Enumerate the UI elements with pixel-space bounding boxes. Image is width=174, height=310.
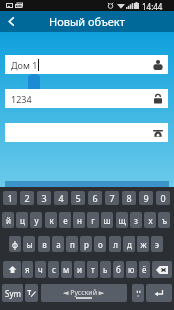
button[interactable]: п: [66, 236, 78, 252]
button[interactable]: г: [87, 212, 99, 228]
button[interactable]: ц: [16, 212, 28, 228]
staticText: р: [84, 239, 89, 250]
staticText: ь: [103, 264, 108, 275]
button[interactable]: 8: [122, 191, 136, 205]
staticText: в: [42, 239, 47, 250]
staticText: к: [49, 215, 54, 226]
button[interactable]: 7: [105, 191, 119, 205]
staticText: 0: [160, 192, 166, 204]
button[interactable]: Sym: [2, 284, 23, 302]
staticText: ю: [128, 264, 135, 275]
staticText: и: [77, 264, 82, 275]
staticText: Sym: [5, 288, 21, 299]
staticText: 1: [7, 192, 13, 204]
button[interactable]: 4: [54, 191, 68, 205]
staticText: 6: [92, 192, 98, 204]
button[interactable]: Change input method: [25, 284, 38, 302]
button[interactable]: о: [94, 236, 106, 252]
button[interactable]: е: [59, 212, 71, 228]
staticText: Новый объект: [49, 14, 125, 29]
button[interactable]: Backspace: [152, 261, 172, 278]
button[interactable]: н: [73, 212, 85, 228]
button[interactable]: ь: [100, 261, 111, 278]
staticText: а: [56, 239, 61, 250]
staticText: ф: [12, 239, 18, 250]
staticText: ё: [142, 264, 147, 275]
button[interactable]: й: [2, 212, 14, 228]
staticText: с: [52, 264, 56, 275]
button[interactable]: к: [45, 212, 57, 228]
button[interactable]: 0: [156, 191, 170, 205]
button[interactable]: и: [74, 261, 85, 278]
button[interactable]: 5: [71, 191, 85, 205]
button[interactable]: 6: [88, 191, 102, 205]
button[interactable]: Back: [0, 11, 22, 32]
button[interactable]: ч: [35, 261, 46, 278]
staticText: х: [148, 215, 153, 226]
button[interactable]: д: [123, 236, 135, 252]
staticText: б: [116, 264, 121, 275]
button[interactable]: я: [22, 261, 33, 278]
staticText: ц: [20, 215, 25, 226]
button[interactable]: с: [48, 261, 59, 278]
button[interactable]: л: [109, 236, 121, 252]
button[interactable]: 1: [3, 191, 17, 205]
button[interactable]: ъ: [158, 212, 170, 228]
button[interactable]: в: [38, 236, 50, 252]
button[interactable]: Space: [41, 284, 127, 302]
staticText: п: [70, 239, 75, 250]
staticText: ж: [140, 239, 147, 250]
button[interactable]: ш: [101, 212, 113, 228]
staticText: й: [6, 215, 11, 226]
button[interactable]: э: [151, 236, 163, 252]
staticText: е: [63, 215, 68, 226]
button[interactable]: ф: [9, 236, 21, 252]
staticText: 2: [24, 192, 30, 204]
button[interactable]: х: [144, 212, 156, 228]
button[interactable]: Enter: [146, 284, 172, 302]
staticText: 14:44: [142, 1, 163, 12]
staticText: 5: [75, 192, 81, 204]
staticText: ш: [103, 215, 111, 226]
staticText: 1234: [11, 93, 32, 105]
button[interactable]: а: [52, 236, 64, 252]
button[interactable]: 2: [20, 191, 34, 205]
staticText: 9: [143, 192, 149, 204]
staticText: г: [91, 215, 95, 226]
staticText: у: [34, 215, 39, 226]
staticText: я: [25, 264, 30, 275]
staticText: 7: [109, 192, 115, 204]
staticText: Дом 1: [11, 59, 38, 71]
button[interactable]: т: [87, 261, 98, 278]
staticText: н: [77, 215, 82, 226]
button[interactable]: [132, 284, 144, 302]
staticText: ъ: [162, 215, 167, 226]
button[interactable]: ё: [139, 261, 150, 278]
button[interactable]: щ: [116, 212, 128, 228]
staticText: з: [134, 215, 138, 226]
button[interactable]: Shift: [3, 261, 21, 278]
staticText: л: [113, 239, 118, 250]
staticText: ы: [26, 239, 33, 250]
button[interactable]: ю: [126, 261, 137, 278]
button[interactable]: р: [80, 236, 92, 252]
button[interactable]: 3: [37, 191, 51, 205]
staticText: ◄ Русский ►: [63, 288, 105, 298]
staticText: 4: [58, 192, 64, 204]
button[interactable]: 9: [139, 191, 153, 205]
button[interactable]: б: [113, 261, 124, 278]
button[interactable]: м: [61, 261, 72, 278]
button[interactable]: у: [30, 212, 42, 228]
staticText: ч: [38, 264, 43, 275]
button[interactable]: ж: [137, 236, 149, 252]
staticText: щ: [118, 215, 126, 226]
staticText: 3: [41, 192, 47, 204]
button[interactable]: 1234: [5, 89, 168, 108]
button[interactable]: Дом 1: [5, 55, 168, 74]
button[interactable]: [5, 123, 168, 142]
button[interactable]: з: [130, 212, 142, 228]
staticText: о: [98, 239, 103, 250]
staticText: т: [91, 264, 95, 275]
button[interactable]: ы: [23, 236, 35, 252]
staticText: 8: [126, 192, 132, 204]
